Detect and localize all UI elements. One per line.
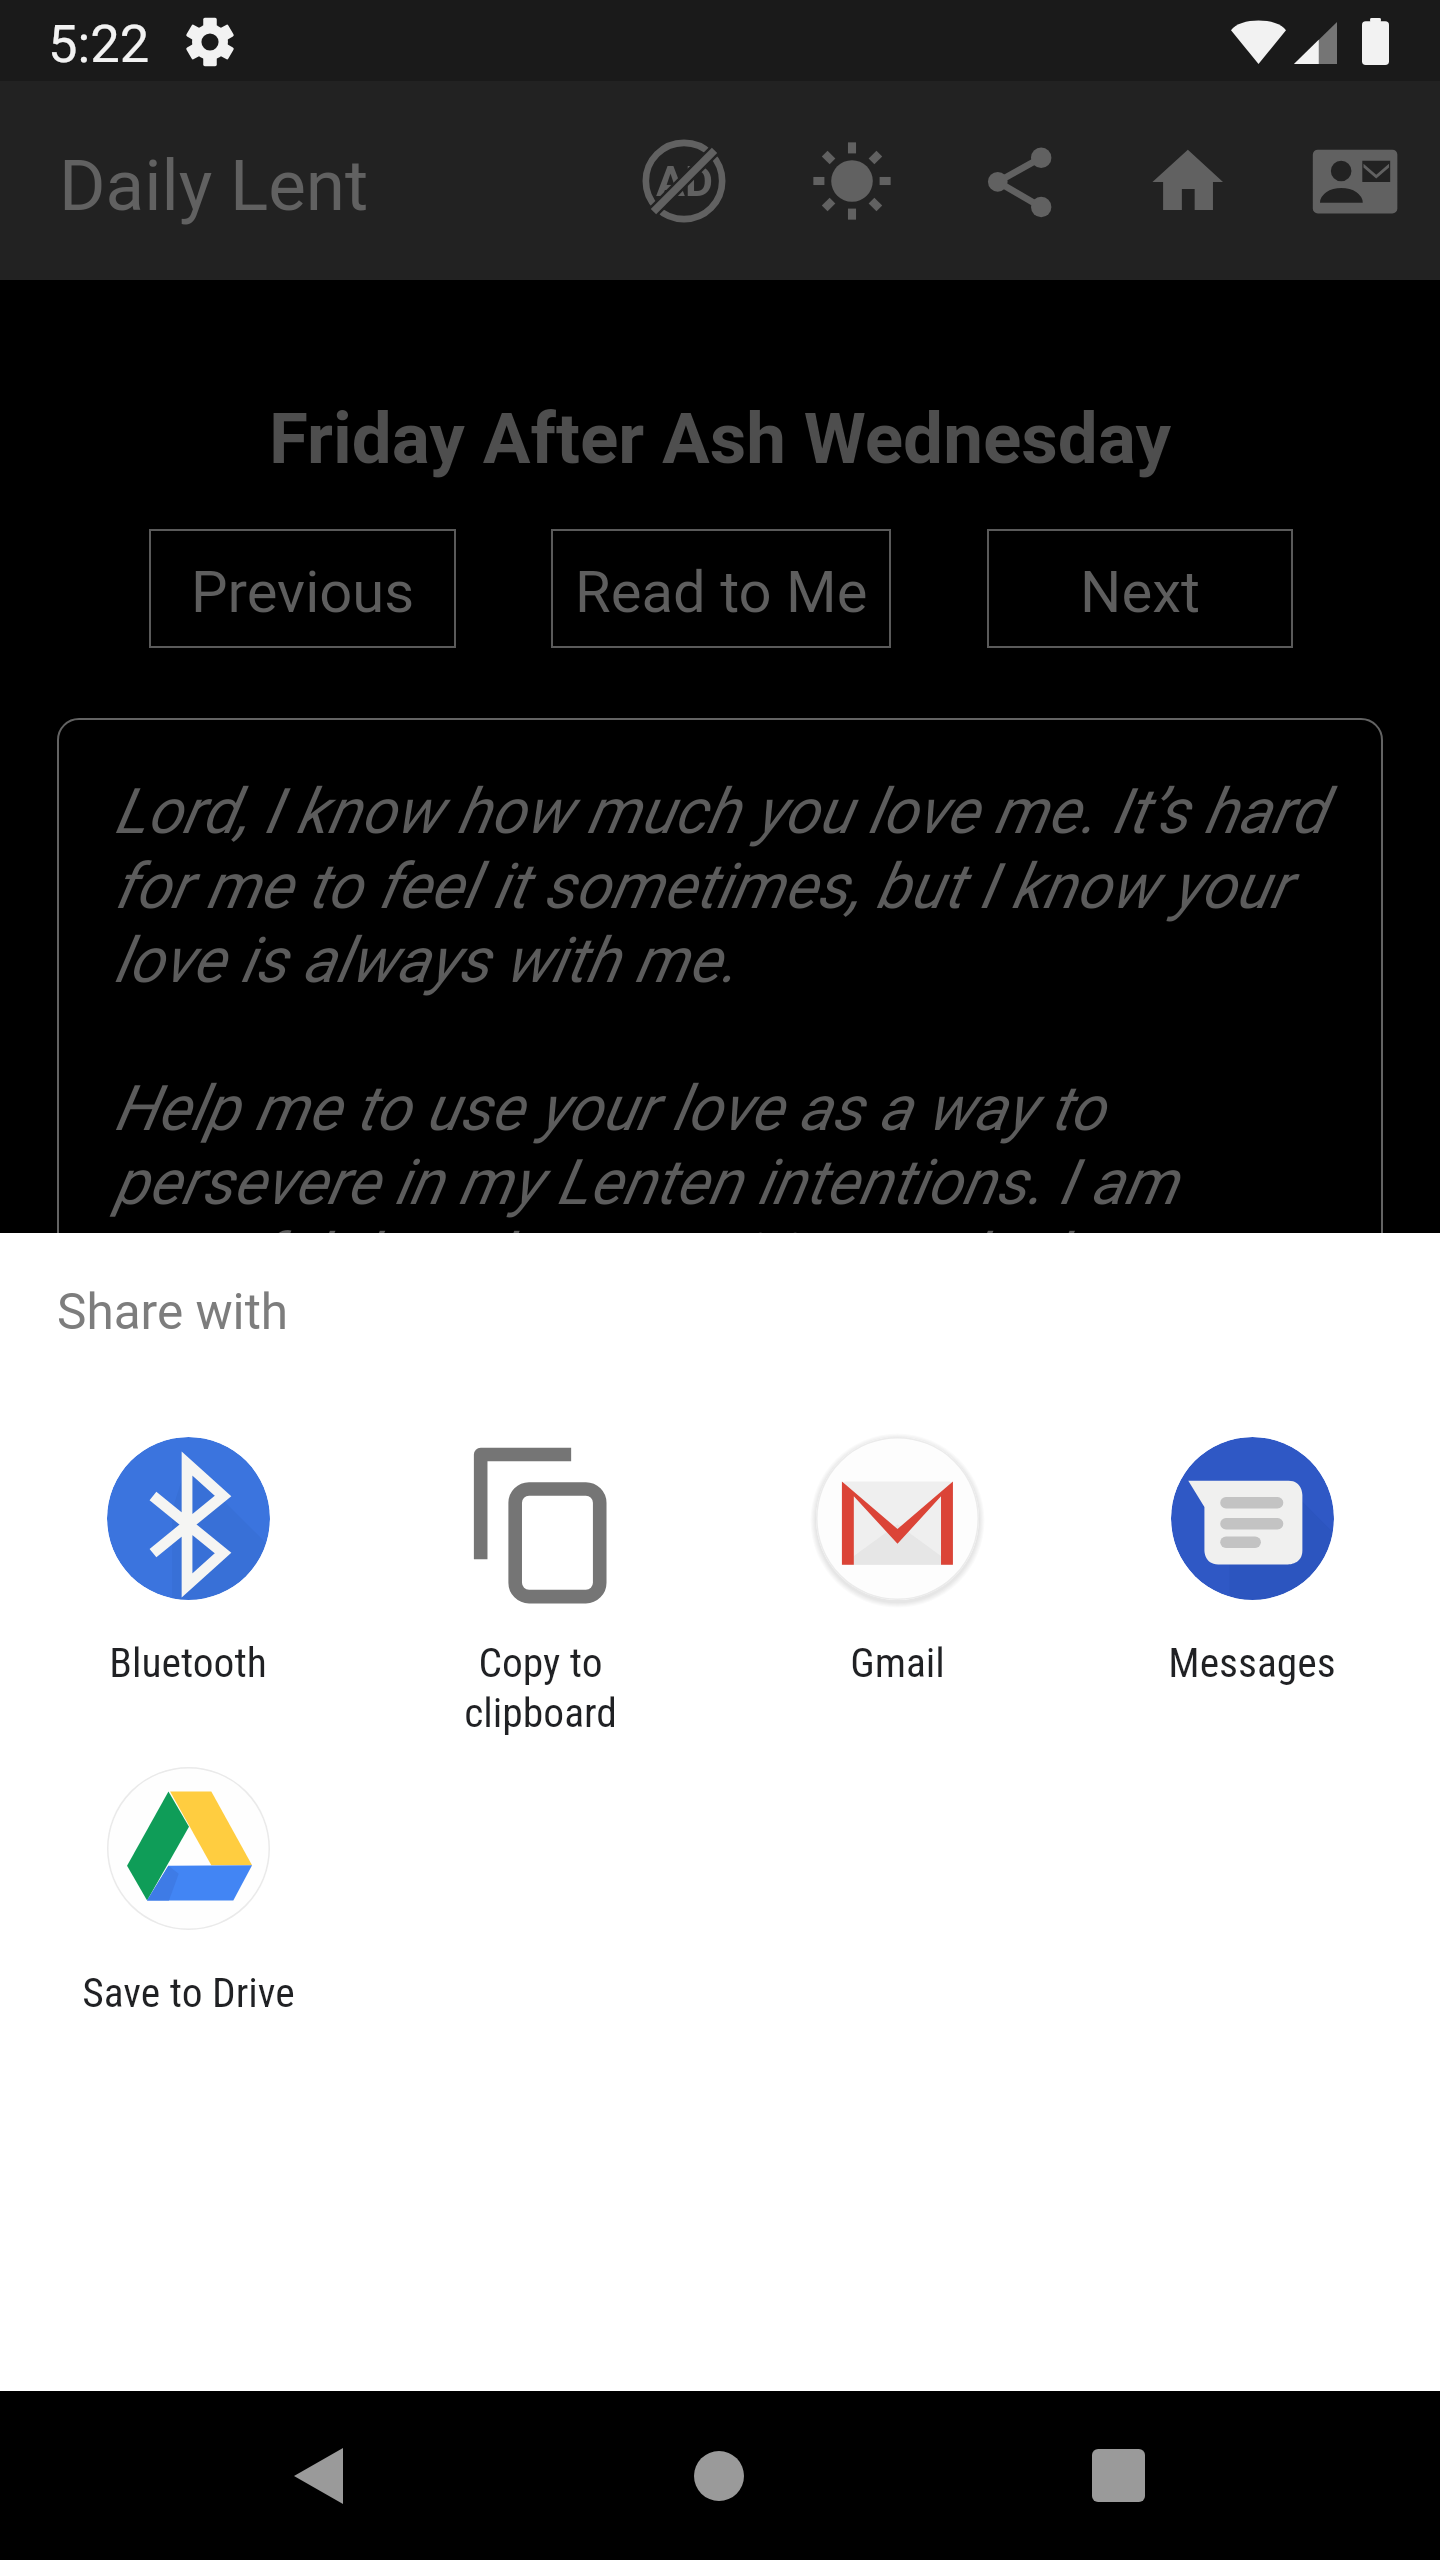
staticText: AD	[656, 156, 713, 206]
staticText: Read to Me	[575, 558, 868, 626]
button[interactable]: Bluetooth	[23, 1437, 353, 1687]
staticText: Copy to clipboard	[464, 1638, 617, 1737]
button[interactable]: Remove ads	[604, 81, 764, 280]
staticText: Daily Lent	[59, 144, 369, 227]
staticText: Previous	[191, 558, 415, 626]
button[interactable]: Read to Me	[551, 529, 891, 648]
staticText: Lord, I know how much you love me. It’s …	[114, 775, 1364, 1293]
staticText: Next	[1080, 558, 1200, 626]
button[interactable]: Recents	[1034, 2391, 1202, 2560]
button[interactable]: Next	[987, 529, 1293, 648]
button[interactable]: Home	[1105, 81, 1265, 280]
button[interactable]: Save to Drive	[23, 1767, 353, 2017]
button[interactable]: Previous	[149, 529, 456, 648]
staticText: Messages	[1168, 1638, 1336, 1687]
staticText: Save to Drive	[82, 1968, 295, 2017]
button[interactable]: Contacts	[1272, 81, 1432, 280]
staticText: Bluetooth	[109, 1638, 267, 1687]
staticText: Gmail	[850, 1638, 945, 1687]
button[interactable]: Share	[937, 81, 1097, 280]
button[interactable]: Gmail	[732, 1437, 1062, 1687]
button[interactable]: Copy to clipboard	[375, 1437, 705, 1737]
staticText: Friday After Ash Wednesday	[0, 397, 1440, 480]
staticText: Share with	[57, 1283, 289, 1341]
button[interactable]: Brightness	[772, 81, 932, 280]
button[interactable]: Back	[234, 2391, 402, 2560]
button[interactable]: Home	[635, 2391, 803, 2560]
staticText: 5:22	[48, 13, 150, 75]
button[interactable]: Messages	[1087, 1437, 1417, 1687]
